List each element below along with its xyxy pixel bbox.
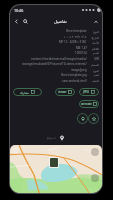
button[interactable]: Favorite [88,113,99,124]
staticText: Sheet template.jpg [61,73,87,77]
staticText: اسم الملف [90,73,99,77]
staticText: تفاصيل [54,19,67,24]
staticText: URI [90,57,99,61]
staticText: MB 1.47 [76,46,87,50]
button[interactable]: Map layers [12,147,19,154]
staticText: viewer [58,90,67,94]
button[interactable]: Location [77,113,88,124]
staticText: التطبيق [90,79,99,83]
staticText: storage/emulated/0/Pictures/TG-times-int… [22,62,87,66]
staticText: النوع [90,30,99,33]
button[interactable]: Zoom out [91,174,99,182]
staticText: ٢٠٢٣/١١/١٨ ١٠:٠٩ [64,35,87,39]
button[interactable]: viewer [55,88,75,96]
staticText: image/jpeg [71,68,87,72]
staticText: 10:46 [14,8,24,13]
button[interactable]: Photo location [50,158,58,167]
staticText: التاريخ [90,36,99,39]
staticText: النوع [90,69,99,72]
staticText: content://media/external/images/media/ [31,57,87,61]
button[interactable]: Collapse [91,17,100,26]
staticText: الموقع [47,136,56,140]
staticText: animate [81,102,92,106]
button[interactable]: Search [21,17,30,26]
staticText: 1000124 [75,51,87,55]
button[interactable]: Back [12,17,21,26]
staticText: المعرف [90,51,99,55]
staticText: JPEG [83,90,90,94]
staticText: الحجم [90,47,99,50]
staticText: MP 13 · 4208 × 3160 [59,40,87,44]
button[interactable]: animate [79,100,99,108]
button[interactable]: Zoom in [91,148,99,156]
button[interactable]: مشاركة [13,88,42,96]
button[interactable]: JPEG [79,88,99,96]
staticText: الأبعاد [90,41,99,44]
staticText: مشاركة [20,91,30,94]
staticText: Sheet template [66,29,87,33]
staticText: cam-android-shell [62,79,87,83]
staticText: المسار [90,63,99,66]
